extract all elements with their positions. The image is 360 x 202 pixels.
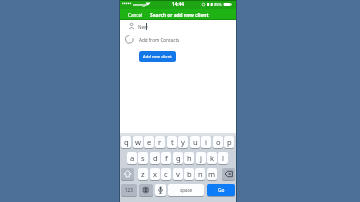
button[interactable]: k: [207, 152, 217, 164]
staticText: 85%: [214, 2, 222, 7]
button[interactable]: h: [184, 152, 194, 164]
staticText: b: [187, 169, 192, 179]
staticText: 123: [125, 187, 133, 193]
button[interactable]: [139, 184, 153, 196]
button[interactable]: f: [161, 152, 171, 164]
staticText: space: [180, 187, 193, 193]
button[interactable]: Add new client: [139, 51, 176, 62]
staticText: h: [187, 153, 192, 163]
button[interactable]: j: [196, 152, 206, 164]
button[interactable]: l: [218, 152, 228, 164]
button[interactable]: space: [168, 184, 204, 196]
button[interactable]: t: [167, 136, 177, 148]
staticText: e: [147, 137, 152, 147]
button[interactable]: r: [155, 136, 165, 148]
button[interactable]: Cancel: [126, 9, 144, 20]
button[interactable]: z: [138, 168, 148, 180]
staticText: j: [200, 153, 202, 163]
staticText: n: [198, 169, 203, 179]
staticText: k: [210, 153, 215, 163]
staticText: x: [153, 169, 158, 179]
staticText: Cancel: [128, 12, 143, 18]
button[interactable]: p: [224, 136, 234, 148]
button[interactable]: g: [173, 152, 183, 164]
staticText: t: [171, 137, 174, 147]
button[interactable]: v: [173, 168, 183, 180]
button[interactable]: [155, 184, 166, 196]
staticText: New: [138, 24, 148, 30]
staticText: Add from Contacts: [139, 37, 180, 43]
staticText: s: [141, 153, 145, 163]
staticText: v: [176, 169, 180, 179]
staticText: i: [205, 137, 207, 147]
button[interactable]: [222, 168, 235, 180]
staticText: 14:44: [172, 1, 185, 7]
staticText: o: [216, 137, 221, 147]
button[interactable]: d: [150, 152, 160, 164]
staticText: z: [141, 169, 145, 179]
button[interactable]: Go: [207, 184, 235, 196]
button[interactable]: m: [207, 168, 217, 180]
staticText: p: [227, 137, 232, 147]
button[interactable]: 123: [121, 184, 137, 196]
staticText: r: [158, 137, 162, 147]
button[interactable]: q: [121, 136, 131, 148]
staticText: Search or add new client: [150, 12, 209, 19]
button[interactable]: New: [120, 20, 236, 34]
staticText: m: [208, 169, 216, 179]
button[interactable]: n: [195, 168, 205, 180]
button[interactable]: b: [184, 168, 194, 180]
staticText: d: [153, 153, 158, 163]
button[interactable]: s: [138, 152, 148, 164]
button[interactable]: x: [150, 168, 160, 180]
staticText: a: [130, 153, 135, 163]
button[interactable]: e: [144, 136, 154, 148]
button[interactable]: a: [127, 152, 137, 164]
staticText: g: [176, 153, 181, 163]
staticText: f: [165, 153, 168, 163]
staticText: c: [164, 169, 168, 179]
staticText: y: [181, 137, 185, 147]
staticText: orange: [133, 1, 148, 7]
staticText: Add new client: [143, 54, 172, 60]
button[interactable]: [121, 168, 134, 180]
button[interactable]: u: [190, 136, 200, 148]
staticText: Go: [218, 187, 225, 194]
button[interactable]: w: [133, 136, 143, 148]
button[interactable]: o: [213, 136, 223, 148]
button[interactable]: i: [201, 136, 211, 148]
staticText: l: [222, 153, 224, 163]
button[interactable]: Add from Contacts: [120, 34, 236, 47]
staticText: w: [135, 137, 141, 147]
button[interactable]: c: [161, 168, 171, 180]
button[interactable]: y: [178, 136, 188, 148]
staticText: u: [193, 137, 198, 147]
staticText: q: [124, 137, 129, 147]
